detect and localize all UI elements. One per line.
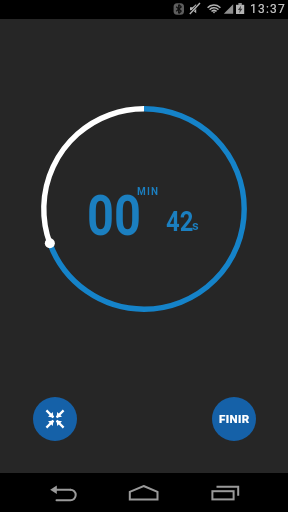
button[interactable]: FINIR — [212, 397, 256, 441]
staticText: 13:37 — [250, 2, 286, 16]
staticText: 00 — [87, 183, 142, 249]
staticText: s — [192, 218, 199, 233]
staticText: 42 — [166, 205, 194, 238]
button[interactable] — [0, 473, 96, 512]
button[interactable] — [33, 397, 77, 441]
button[interactable] — [96, 473, 192, 512]
staticText: MIN — [137, 186, 160, 198]
staticText: FINIR — [219, 412, 250, 425]
button[interactable] — [192, 473, 288, 512]
